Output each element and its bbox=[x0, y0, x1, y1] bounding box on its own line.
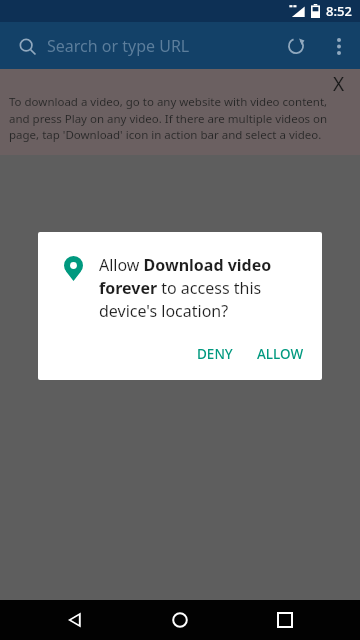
staticText: Search or type URL bbox=[47, 35, 274, 57]
staticText: Allow Download video forever to access t… bbox=[99, 254, 308, 322]
staticText: X bbox=[333, 71, 345, 97]
button[interactable]: DENY bbox=[189, 338, 241, 370]
staticText: To download a video, go to any website w… bbox=[9, 94, 348, 142]
button[interactable]: ALLOW bbox=[249, 338, 312, 370]
button[interactable]: Home bbox=[150, 600, 210, 640]
button[interactable]: Recent apps bbox=[255, 600, 315, 640]
button[interactable]: Refresh bbox=[274, 24, 318, 68]
button[interactable]: More options bbox=[318, 25, 360, 67]
staticText: 8:52 bbox=[326, 2, 352, 20]
staticText: ALLOW bbox=[257, 345, 304, 363]
staticText: DENY bbox=[197, 345, 233, 363]
button[interactable]: Close bbox=[324, 69, 354, 99]
button[interactable]: Search bbox=[10, 29, 44, 63]
button[interactable]: Back bbox=[45, 600, 105, 640]
